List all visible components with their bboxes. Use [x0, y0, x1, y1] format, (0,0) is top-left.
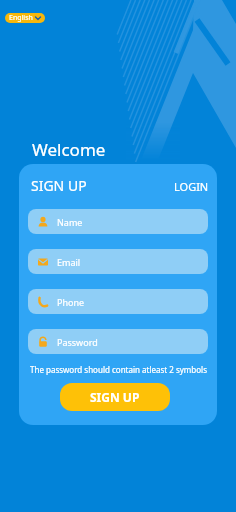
button[interactable]: LOGIN	[174, 179, 209, 194]
button[interactable]: Phone	[28, 289, 208, 314]
staticText: Welcome	[32, 138, 106, 161]
staticText: The password should contain atleast 2 sy…	[30, 364, 207, 375]
staticText: Name	[57, 216, 83, 228]
staticText: SIGN UP	[90, 389, 140, 405]
button[interactable]: English	[5, 13, 45, 23]
button[interactable]: Email	[28, 249, 208, 274]
staticText: SIGN UP	[31, 176, 87, 195]
staticText: Phone	[57, 296, 85, 308]
staticText: Password	[57, 336, 98, 348]
staticText: English	[9, 13, 33, 23]
button[interactable]: Password	[28, 329, 208, 354]
button[interactable]: SIGN UP	[60, 383, 170, 411]
staticText: Email	[57, 256, 81, 268]
button[interactable]: Name	[28, 209, 208, 234]
